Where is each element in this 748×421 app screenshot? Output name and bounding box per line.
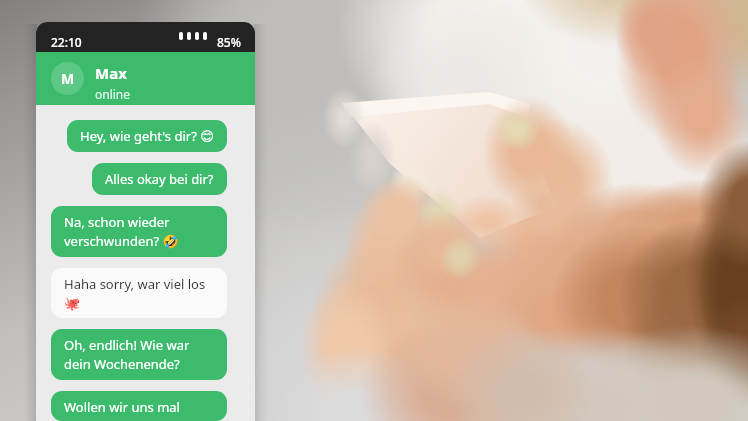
staticText: Wollen wir uns mal treffen? — [64, 398, 214, 414]
staticText: Na, schon wieder verschwunden? 🤣 — [64, 213, 214, 250]
button[interactable]: Hey, wie geht's dir? 😊 — [67, 120, 227, 152]
button[interactable]: Na, schon wieder verschwunden? 🤣 — [51, 206, 227, 257]
button[interactable]: Oh, endlich! Wie war dein Wochenende? — [51, 329, 227, 380]
button[interactable]: Alles okay bei dir? — [92, 163, 227, 195]
button[interactable]: M — [36, 52, 255, 105]
staticText: online — [95, 86, 131, 102]
staticText: 85% — [217, 34, 241, 50]
staticText: Haha sorry, war viel los 🐙 — [64, 275, 214, 311]
staticText: Hey, wie geht's dir? 😊 — [80, 127, 214, 145]
staticText: 22:10 — [51, 34, 82, 50]
staticText: Oh, endlich! Wie war dein Wochenende? — [64, 336, 214, 373]
staticText: Alles okay bei dir? — [105, 170, 214, 188]
staticText: Max — [95, 63, 127, 83]
button[interactable]: Haha sorry, war viel los 🐙 — [51, 268, 227, 318]
button[interactable]: Wollen wir uns mal treffen? — [51, 391, 227, 421]
staticText: M — [61, 69, 75, 88]
